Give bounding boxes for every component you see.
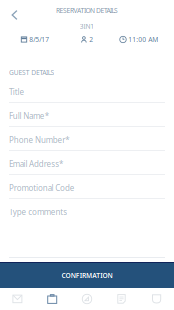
staticText: 8/5/17	[29, 35, 49, 44]
staticText: Promotional Code	[9, 183, 75, 193]
button[interactable]: Explore	[70, 288, 104, 310]
button[interactable]: Back	[0, 4, 29, 26]
button[interactable]: Notes	[104, 288, 139, 310]
staticText: 2	[89, 35, 93, 44]
button[interactable]: CONFIRMATION	[0, 262, 174, 288]
staticText: Type comments	[9, 207, 67, 217]
staticText: RESERVATION DETAILS	[56, 6, 118, 15]
button[interactable]: Messages	[0, 288, 35, 310]
staticText: Title	[9, 87, 24, 97]
button[interactable]: Dining	[139, 288, 174, 310]
staticText: 3IN1	[80, 22, 94, 31]
staticText: GUEST DETAILS	[9, 68, 54, 77]
staticText: Full Name*	[9, 111, 49, 121]
button[interactable]: Reservations	[35, 288, 70, 310]
staticText: Email Address*	[9, 159, 63, 169]
staticText: CONFIRMATION	[61, 271, 113, 280]
staticText: Phone Number*	[9, 135, 69, 145]
staticText: 11:00 AM	[128, 35, 158, 44]
